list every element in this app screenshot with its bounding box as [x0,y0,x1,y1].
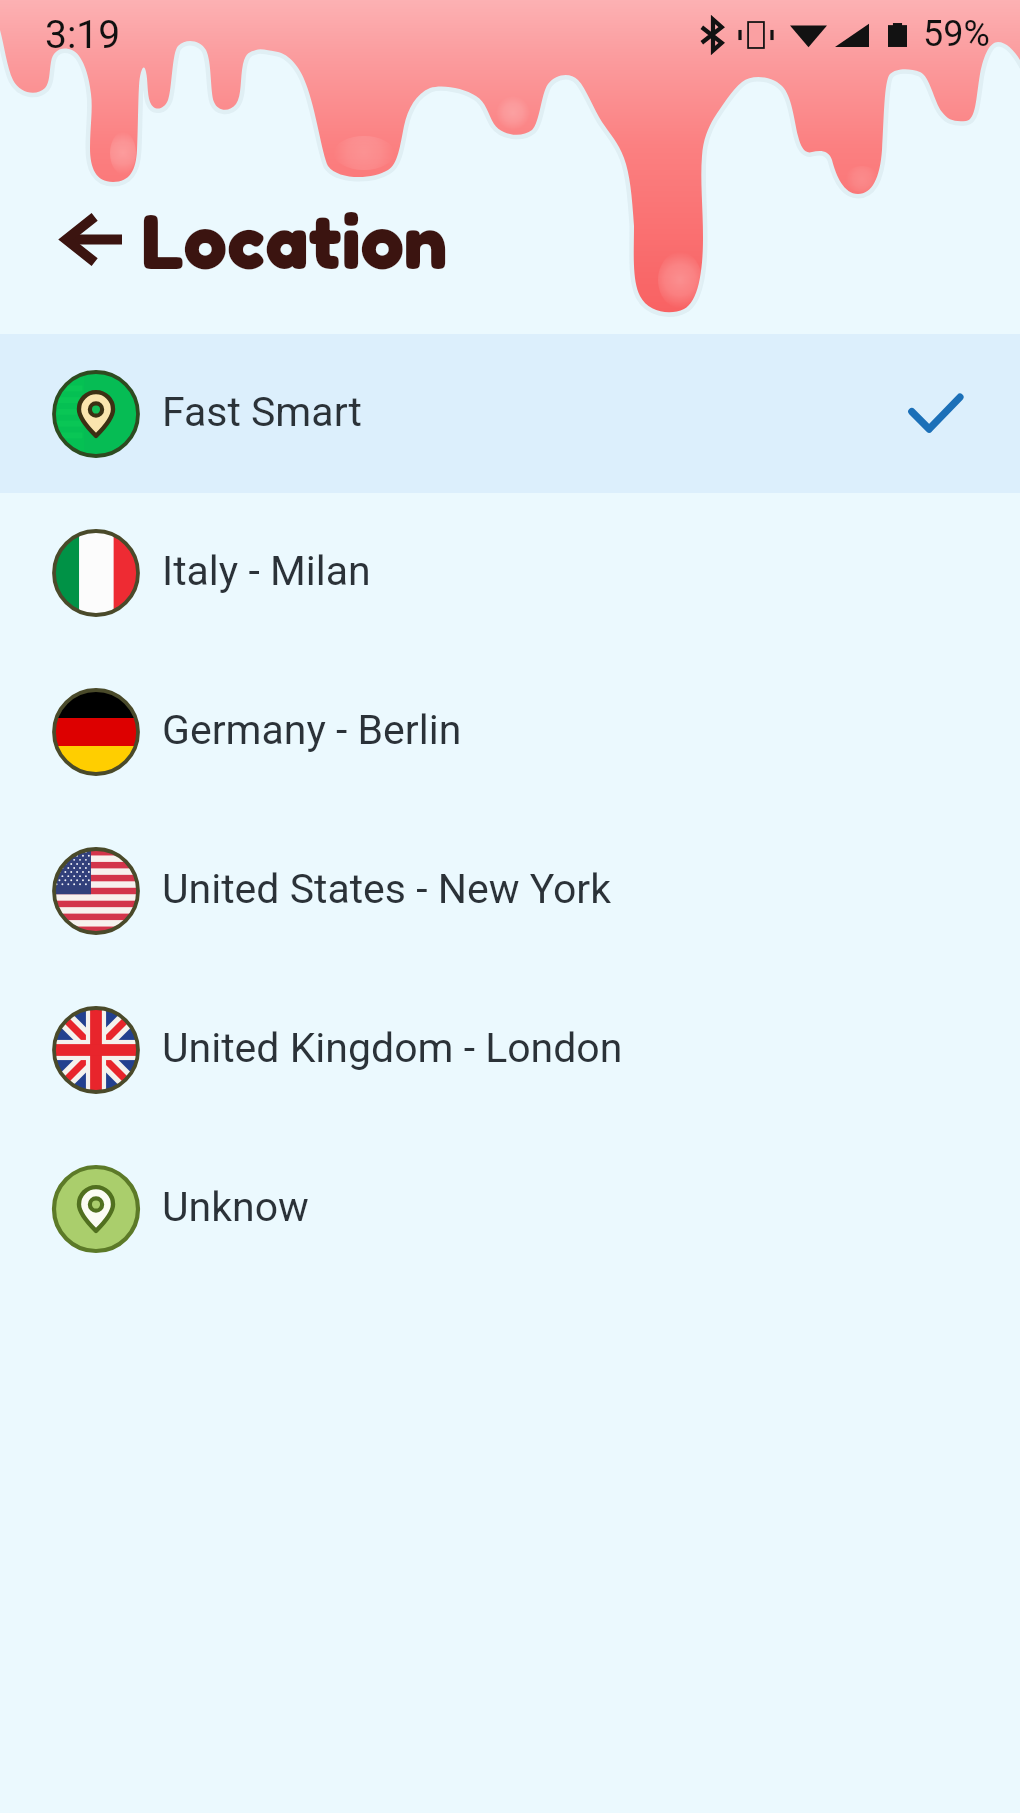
button[interactable]: Italy - Milan [0,493,1020,652]
staticText: Location [140,193,448,286]
staticText: Unknow [162,1183,309,1231]
staticText: Germany - Berlin [162,706,462,754]
staticText: United States - New York [162,865,612,913]
button[interactable]: Unknow [0,1129,1020,1288]
staticText: Fast Smart [162,388,362,436]
button[interactable]: Fast Smart [0,334,1020,493]
staticText: 3:19 [45,12,121,58]
staticText: United Kingdom - London [162,1024,623,1072]
staticText: 59% [923,13,990,55]
button[interactable]: United States - New York [0,811,1020,970]
button[interactable]: Back [54,200,132,278]
button[interactable]: Germany - Berlin [0,652,1020,811]
button[interactable]: United Kingdom - London [0,970,1020,1129]
staticText: Italy - Milan [162,547,371,595]
